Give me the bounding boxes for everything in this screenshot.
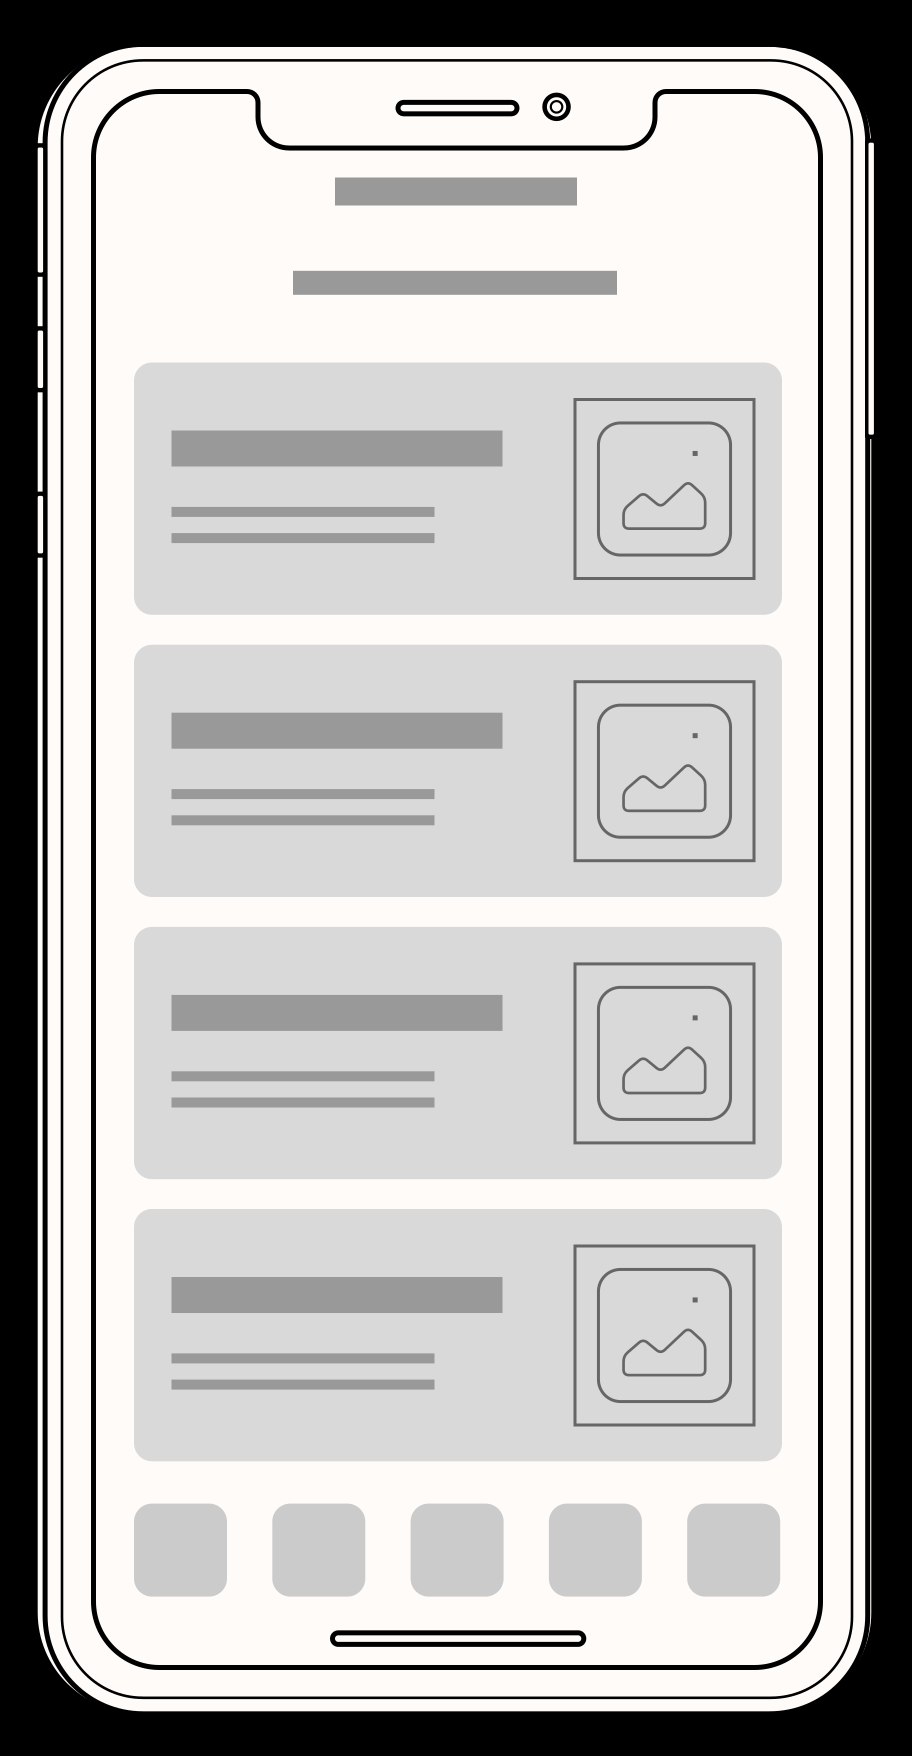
button[interactable]: Tab 3 — [411, 1504, 504, 1597]
button[interactable]: Article 4 — [134, 1209, 782, 1461]
button[interactable]: Tab 2 — [272, 1504, 365, 1597]
button[interactable]: Tab 4 — [549, 1504, 642, 1597]
button[interactable]: Article 1 — [134, 362, 782, 615]
button[interactable]: Tab 5 — [687, 1504, 780, 1597]
button[interactable]: Article 2 — [134, 645, 782, 897]
button[interactable]: Tab 1 — [134, 1504, 227, 1597]
button[interactable]: Article 3 — [134, 927, 782, 1179]
